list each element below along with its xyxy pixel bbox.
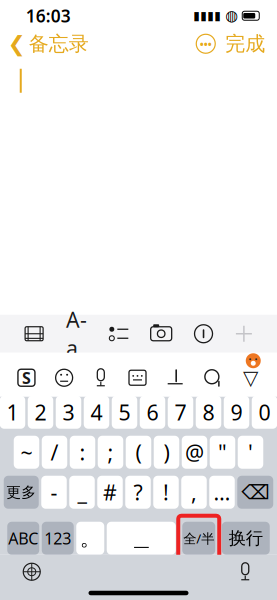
staticText: ": [218, 438, 227, 466]
button[interactable]: ,: [181, 476, 207, 509]
staticText: 完成: [225, 31, 265, 56]
button[interactable]: 8: [196, 396, 221, 429]
button[interactable]: #: [97, 476, 123, 509]
staticText: …: [213, 478, 230, 506]
staticText: ?: [133, 478, 142, 506]
staticText: ,: [191, 478, 197, 506]
staticText: ;: [107, 438, 113, 466]
button[interactable]: ": [210, 436, 235, 469]
button[interactable]: !: [153, 476, 179, 509]
staticText: ': [248, 438, 253, 466]
button[interactable]: 7: [168, 396, 193, 429]
button[interactable]: 换行: [222, 522, 270, 555]
button[interactable]: Dictation: [235, 561, 255, 583]
staticText: ⌫: [241, 481, 269, 504]
button[interactable]: Voice input: [91, 367, 111, 389]
button[interactable]: Handwriting: [164, 368, 186, 388]
staticText: #: [103, 478, 117, 506]
button[interactable]: 1: [0, 396, 25, 429]
button[interactable]: 更多: [4, 476, 39, 509]
button[interactable]: (: [126, 436, 151, 469]
button[interactable]: Table: [23, 325, 45, 343]
button[interactable]: More options: [190, 28, 221, 59]
button[interactable]: 完成: [221, 25, 277, 62]
button[interactable]: ': [238, 436, 263, 469]
button[interactable]: …: [209, 476, 235, 509]
staticText: ~: [20, 438, 32, 466]
staticText: 1: [6, 398, 18, 426]
button[interactable]: Backspace: [237, 476, 273, 509]
button[interactable]: 3: [56, 396, 81, 429]
button[interactable]: ❮: [0, 25, 89, 62]
button[interactable]: _: [69, 476, 95, 509]
staticText: 。: [80, 525, 101, 551]
button[interactable]: Sogou menu: [15, 368, 37, 388]
staticText: 更多: [6, 483, 36, 501]
staticText: •••: [200, 37, 212, 51]
button[interactable]: /: [42, 436, 67, 469]
staticText: ▽: [243, 366, 258, 389]
button[interactable]: ABC: [7, 522, 39, 555]
staticText: 6: [146, 398, 158, 426]
button[interactable]: 123: [42, 522, 74, 555]
staticText: ❮: [8, 32, 26, 56]
staticText: 5: [118, 398, 130, 426]
button[interactable]: Markup: [192, 324, 214, 344]
staticText: 8: [202, 398, 214, 426]
button[interactable]: Text format: [64, 324, 88, 344]
staticText: Aa: [66, 305, 87, 362]
staticText: 0: [258, 398, 270, 426]
button[interactable]: -: [41, 476, 67, 509]
staticText: ): [163, 438, 169, 466]
staticText: @: [185, 438, 204, 466]
button[interactable]: @: [182, 436, 207, 469]
staticText: 换行: [229, 528, 263, 549]
staticText: S: [22, 367, 31, 388]
button[interactable]: Search: [202, 368, 224, 388]
button[interactable]: 全/半: [182, 522, 215, 555]
button[interactable]: Checklist: [108, 325, 130, 343]
button[interactable]: ~: [14, 436, 39, 469]
staticText: ＿: [131, 525, 152, 551]
staticText: ◍: [225, 7, 238, 24]
button[interactable]: ): [154, 436, 179, 469]
button[interactable]: 2: [28, 396, 53, 429]
staticText: !: [163, 478, 169, 506]
button[interactable]: Close: [234, 324, 254, 344]
staticText: 123: [44, 528, 71, 549]
button[interactable]: ?: [125, 476, 151, 509]
staticText: _: [77, 478, 86, 506]
button[interactable]: 6: [140, 396, 165, 429]
staticText: 16:03: [26, 4, 71, 27]
button[interactable]: 。: [76, 522, 104, 555]
button[interactable]: 4: [84, 396, 109, 429]
staticText: 2: [34, 398, 46, 426]
button[interactable]: Camera: [149, 324, 173, 344]
staticText: 9: [230, 398, 242, 426]
button[interactable]: 5: [112, 396, 137, 429]
staticText: ▮▮▮▮: [193, 9, 221, 22]
button[interactable]: :: [70, 436, 95, 469]
button[interactable]: Emoji: [53, 368, 75, 388]
staticText: 备忘录: [29, 31, 89, 56]
staticText: (: [135, 438, 141, 466]
staticText: 7: [174, 398, 186, 426]
button[interactable]: Switch keyboard: [22, 562, 42, 582]
button[interactable]: Collapse: [240, 368, 262, 388]
staticText: 全/半: [183, 529, 214, 547]
button[interactable]: ＿: [107, 522, 176, 555]
button[interactable]: 0: [252, 396, 277, 429]
staticText: :: [79, 438, 85, 466]
staticText: 4: [90, 398, 102, 426]
staticText: 3: [62, 398, 74, 426]
staticText: -: [50, 478, 57, 506]
button[interactable]: 9: [224, 396, 249, 429]
staticText: /: [50, 438, 58, 466]
button[interactable]: ;: [98, 436, 123, 469]
button[interactable]: Keypad: [126, 368, 148, 388]
staticText: ABC: [8, 528, 38, 549]
